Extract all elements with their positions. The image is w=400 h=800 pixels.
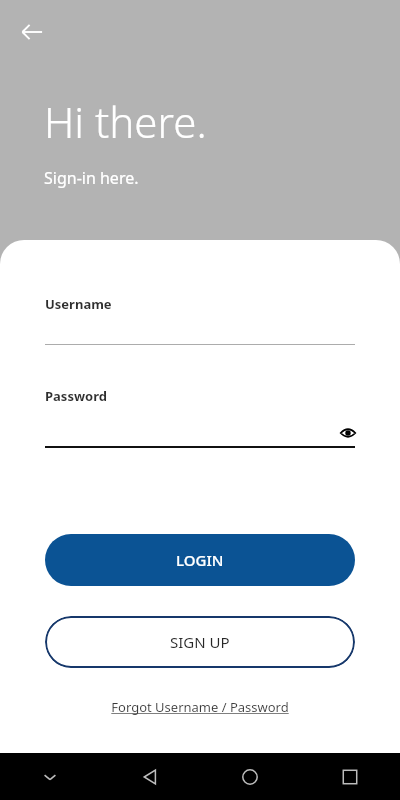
- staticText: Password: [45, 387, 107, 405]
- staticText: Username: [45, 295, 112, 313]
- button[interactable]: Forgot Username / Password: [111, 698, 289, 716]
- button[interactable]: Show password: [336, 423, 360, 443]
- button[interactable]: Back: [100, 753, 200, 800]
- button[interactable]: Hide keyboard: [0, 753, 100, 800]
- button[interactable]: Recent apps: [300, 753, 400, 800]
- button[interactable]: Back: [12, 12, 52, 52]
- staticText: LOGIN: [176, 550, 224, 570]
- button[interactable]: LOGIN: [45, 534, 355, 586]
- staticText: Hi there.: [44, 93, 207, 150]
- button[interactable]: SIGN UP: [45, 616, 355, 668]
- button[interactable]: Home: [200, 753, 300, 800]
- staticText: SIGN UP: [170, 632, 230, 652]
- staticText: Sign-in here.: [44, 167, 139, 189]
